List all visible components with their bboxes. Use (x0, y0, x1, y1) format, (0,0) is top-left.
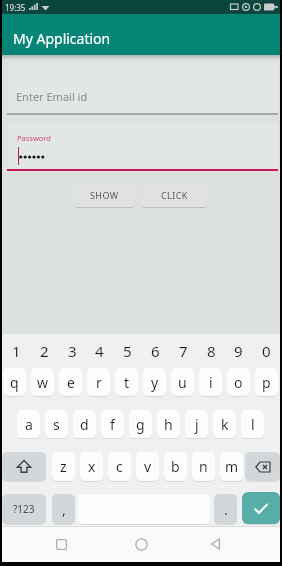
button[interactable]: Password (8, 123, 278, 170)
staticText: l (251, 415, 255, 434)
staticText: CLICK (161, 189, 188, 201)
button[interactable]: t (115, 368, 138, 396)
staticText: s (53, 415, 60, 434)
staticText: r (96, 373, 102, 392)
button[interactable]: z (52, 452, 75, 481)
staticText: 1 (12, 341, 21, 361)
button[interactable]: o (227, 368, 250, 396)
button[interactable]: d (73, 410, 96, 438)
button[interactable]: 7 (169, 337, 197, 365)
button[interactable]: j (185, 410, 208, 438)
button[interactable]: 2 (30, 337, 58, 365)
staticText: m (225, 457, 239, 476)
staticText: 4 (95, 341, 104, 361)
button[interactable]: 4 (85, 337, 113, 365)
button[interactable]: , (52, 494, 75, 524)
button[interactable]: l (241, 410, 264, 438)
button[interactable]: 8 (197, 337, 225, 365)
button[interactable]: 9 (224, 337, 252, 365)
button[interactable]: y (143, 368, 166, 396)
button[interactable]: 6 (141, 337, 169, 365)
staticText: 2 (40, 341, 49, 361)
staticText: , (62, 500, 66, 519)
button[interactable] (50, 533, 72, 555)
button[interactable]: i (199, 368, 222, 396)
button[interactable]: h (157, 410, 180, 438)
button[interactable]: 3 (58, 337, 86, 365)
button[interactable]: x (80, 452, 103, 481)
staticText: x (88, 457, 96, 476)
staticText: z (60, 457, 67, 476)
button[interactable]: m (220, 452, 243, 481)
staticText: g (136, 415, 145, 434)
button[interactable]: . (214, 494, 237, 524)
staticText: b (171, 457, 180, 476)
button[interactable] (245, 452, 280, 481)
button[interactable]: k (213, 410, 236, 438)
staticText: i (209, 373, 213, 392)
button[interactable]: 5 (113, 337, 141, 365)
button[interactable]: Enter Email id (8, 63, 278, 115)
button[interactable]: q (3, 368, 26, 396)
button[interactable] (242, 492, 280, 524)
button[interactable]: s (45, 410, 68, 438)
staticText: 19:35 (5, 2, 26, 13)
button[interactable] (130, 533, 152, 555)
staticText: 0 (262, 341, 271, 361)
staticText: q (10, 373, 19, 392)
staticText: o (234, 373, 243, 392)
staticText: j (195, 415, 199, 434)
staticText: 6 (151, 341, 160, 361)
staticText: My Application (13, 29, 111, 48)
staticText: p (262, 373, 271, 392)
staticText: a (25, 415, 33, 434)
staticText: 3 (68, 341, 77, 361)
button[interactable]: CLICK (142, 183, 207, 207)
staticText: Enter Email id (16, 89, 88, 104)
button[interactable]: e (59, 368, 82, 396)
button[interactable]: 0 (252, 337, 280, 365)
staticText: Password (17, 133, 51, 143)
button[interactable]: u (171, 368, 194, 396)
staticText: e (67, 373, 75, 392)
button[interactable]: v (136, 452, 159, 481)
button[interactable]: c (108, 452, 131, 481)
staticText: SHOW (90, 189, 119, 201)
button[interactable]: n (192, 452, 215, 481)
button[interactable] (205, 533, 227, 555)
button[interactable]: g (129, 410, 152, 438)
staticText: 5 (123, 341, 132, 361)
button[interactable]: 1 (2, 337, 30, 365)
button[interactable]: SHOW (75, 183, 134, 207)
staticText: 9 (234, 341, 243, 361)
button[interactable]: r (87, 368, 110, 396)
staticText: f (110, 415, 115, 434)
staticText: . (224, 500, 228, 519)
staticText: y (151, 373, 159, 392)
button[interactable]: w (31, 368, 54, 396)
staticText: 7 (179, 341, 188, 361)
staticText: ?123 (13, 502, 35, 516)
button[interactable]: a (17, 410, 40, 438)
staticText: 8 (207, 341, 216, 361)
button[interactable]: p (255, 368, 278, 396)
staticText: u (178, 373, 187, 392)
staticText: d (80, 415, 89, 434)
staticText: w (37, 373, 49, 392)
staticText: c (116, 457, 123, 476)
staticText: h (164, 415, 173, 434)
button[interactable]: ?123 (2, 494, 46, 524)
staticText: k (221, 415, 229, 434)
button[interactable]: f (101, 410, 124, 438)
staticText: n (199, 457, 208, 476)
button[interactable] (2, 452, 46, 481)
staticText: t (124, 373, 130, 392)
staticText: v (144, 457, 152, 476)
button[interactable]: b (164, 452, 187, 481)
